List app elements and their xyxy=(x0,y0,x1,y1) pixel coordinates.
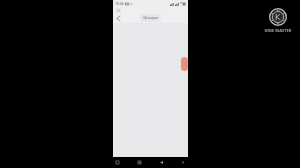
button[interactable]: Back xyxy=(114,13,122,23)
staticText: KINE MASTER xyxy=(264,28,292,34)
button[interactable]: Close xyxy=(115,7,121,13)
staticText: Groups xyxy=(143,15,158,21)
button[interactable]: Recent apps xyxy=(114,159,120,165)
staticText: 10:46 xyxy=(115,1,124,6)
button[interactable]: Groups xyxy=(140,14,161,22)
button[interactable]: Home xyxy=(136,159,142,165)
button[interactable]: Voice input xyxy=(180,159,186,165)
button[interactable]: Back xyxy=(158,159,164,165)
